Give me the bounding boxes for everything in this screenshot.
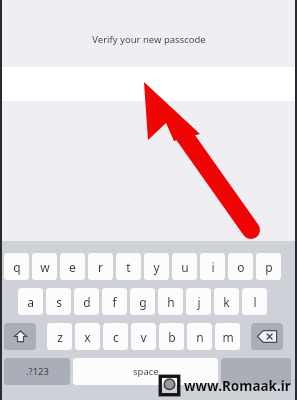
button[interactable]: Passcode field <box>0 67 297 101</box>
button[interactable]: a <box>18 288 43 315</box>
button[interactable]: s <box>46 288 71 315</box>
button[interactable]: u <box>172 253 197 280</box>
button[interactable]: i <box>200 253 225 280</box>
button[interactable]: h <box>158 288 183 315</box>
staticText: l <box>253 294 257 310</box>
staticText: u <box>181 259 189 275</box>
button[interactable]: d <box>74 288 99 315</box>
button[interactable]: Return <box>221 358 291 385</box>
button[interactable]: t <box>116 253 141 280</box>
button[interactable]: q <box>4 253 29 280</box>
button[interactable]: g <box>130 288 155 315</box>
staticText: Verify your new passcode <box>92 33 206 46</box>
staticText: j <box>197 294 201 310</box>
staticText: v <box>140 329 147 345</box>
staticText: k <box>223 294 230 310</box>
button[interactable]: v <box>131 323 156 350</box>
button[interactable]: Shift <box>4 323 36 350</box>
staticText: y <box>153 259 160 275</box>
staticText: c <box>113 329 119 345</box>
staticText: g <box>139 294 147 310</box>
button[interactable]: z <box>47 323 72 350</box>
button[interactable]: x <box>75 323 100 350</box>
staticText: a <box>27 294 34 310</box>
staticText: b <box>168 329 176 345</box>
button[interactable]: e <box>60 253 85 280</box>
button[interactable]: j <box>186 288 211 315</box>
staticText: n <box>196 329 204 345</box>
staticText: www.Romaak.ir <box>184 377 291 395</box>
button[interactable]: Backspace <box>251 323 283 350</box>
button[interactable]: l <box>242 288 267 315</box>
staticText: z <box>57 329 63 345</box>
staticText: e <box>69 259 76 275</box>
button[interactable]: c <box>103 323 128 350</box>
button[interactable]: m <box>215 323 240 350</box>
staticText: t <box>126 259 131 275</box>
button[interactable]: n <box>187 323 212 350</box>
staticText: .?123 <box>26 365 49 378</box>
staticText: x <box>84 329 91 345</box>
button[interactable]: .?123 <box>4 358 70 385</box>
button[interactable]: o <box>228 253 253 280</box>
button[interactable]: w <box>32 253 57 280</box>
button[interactable]: p <box>256 253 281 280</box>
button[interactable]: y <box>144 253 169 280</box>
staticText: q <box>13 259 21 275</box>
button[interactable]: f <box>102 288 127 315</box>
button[interactable]: r <box>88 253 113 280</box>
staticText: d <box>83 294 91 310</box>
staticText: f <box>112 294 117 310</box>
button[interactable]: b <box>159 323 184 350</box>
staticText: o <box>237 259 245 275</box>
button[interactable]: k <box>214 288 239 315</box>
button[interactable]: space <box>73 358 218 385</box>
staticText: space <box>133 365 159 378</box>
staticText: r <box>98 259 103 275</box>
staticText: w <box>40 259 50 275</box>
staticText: i <box>211 259 215 275</box>
staticText: m <box>222 329 234 345</box>
staticText: s <box>56 294 62 310</box>
staticText: p <box>265 259 273 275</box>
staticText: h <box>167 294 175 310</box>
